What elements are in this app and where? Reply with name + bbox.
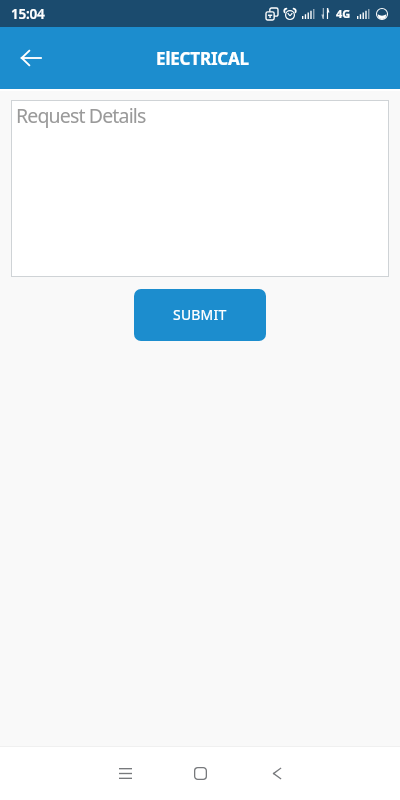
button[interactable]: Back [255,751,299,795]
button[interactable]: Recent apps [103,751,147,795]
staticText: ElECTRICAL [156,47,249,70]
staticText: 4G [336,6,351,21]
staticText: 15:04 [11,5,45,23]
button[interactable]: Back [13,40,49,76]
button[interactable]: Request Details input [11,100,389,277]
staticText: SUBMIT [173,305,227,324]
staticText: Request Details [16,102,146,129]
button[interactable]: Home [178,751,222,795]
button[interactable]: SUBMIT [134,289,266,341]
